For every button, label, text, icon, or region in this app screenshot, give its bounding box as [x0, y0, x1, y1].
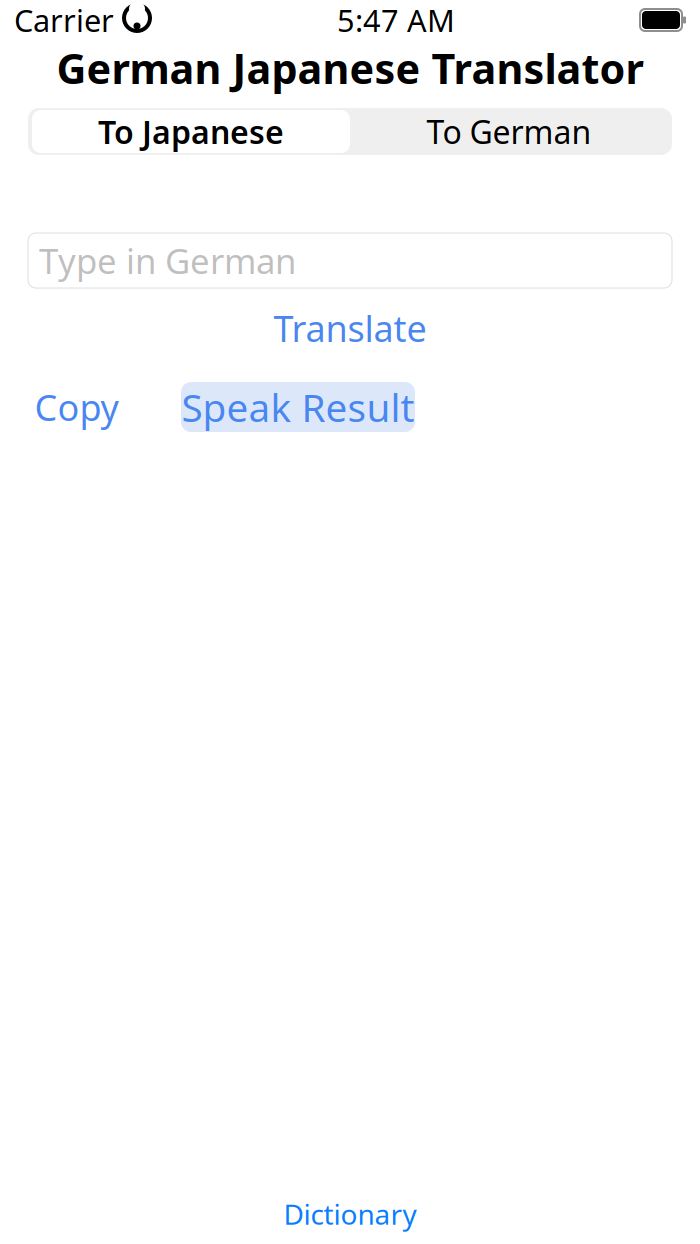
button[interactable]: Copy [28, 382, 125, 432]
button[interactable]: To German [350, 110, 668, 153]
staticText: Dictionary [283, 1195, 416, 1233]
button[interactable]: Translate [28, 308, 672, 348]
staticText: German Japanese Translator [56, 41, 643, 95]
staticText: Carrier [14, 0, 114, 40]
staticText: Copy [34, 383, 118, 431]
staticText: Type in German [39, 237, 296, 283]
button[interactable]: Speak Result [181, 382, 415, 432]
staticText: To Japanese [98, 110, 284, 153]
staticText: Speak Result [181, 381, 414, 433]
button[interactable]: To Japanese [32, 110, 350, 153]
staticText: To German [426, 110, 591, 153]
button[interactable]: Dictionary [28, 1197, 672, 1231]
staticText: Translate [273, 304, 426, 352]
staticText: 5:47 AM [337, 0, 455, 40]
